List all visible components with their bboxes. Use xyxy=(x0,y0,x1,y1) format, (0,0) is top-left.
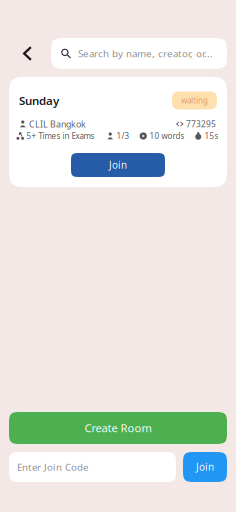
staticText: waiting xyxy=(181,95,208,106)
staticText: 10 words xyxy=(149,131,184,141)
button[interactable]: Search by name, creator, or... xyxy=(51,38,227,69)
staticText: 15s xyxy=(204,131,218,141)
staticText: Join xyxy=(196,460,214,474)
staticText: Join xyxy=(109,158,127,172)
button[interactable]: Join xyxy=(183,452,227,482)
button[interactable]: Enter Join Code xyxy=(9,452,176,482)
staticText: 5+ Times in Exams xyxy=(26,131,94,141)
staticText: Search by name, creator, or... xyxy=(78,47,213,60)
staticText: CLIL Bangkok xyxy=(29,118,86,130)
staticText: 773295 xyxy=(186,118,216,130)
staticText: 1/3 xyxy=(116,131,129,141)
button[interactable]: Create Room xyxy=(9,412,227,444)
button[interactable]: Back xyxy=(9,38,38,69)
staticText: Sunday xyxy=(19,93,59,108)
button[interactable]: Join xyxy=(71,153,165,177)
staticText: Create Room xyxy=(84,420,151,436)
staticText: Enter Join Code xyxy=(17,460,88,474)
